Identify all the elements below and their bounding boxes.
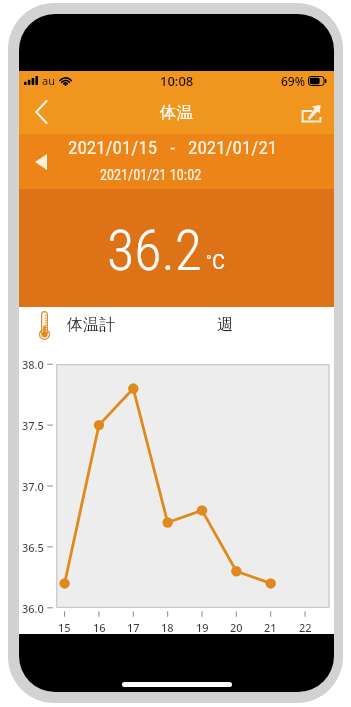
staticText: 20 — [230, 620, 243, 635]
staticText: au — [42, 73, 55, 88]
staticText: 22 — [299, 620, 312, 635]
staticText: 16 — [93, 620, 106, 635]
staticText: 10:08 — [160, 72, 194, 90]
staticText: 15 — [58, 620, 71, 635]
staticText: 18 — [161, 620, 174, 635]
staticText: 36.0 — [22, 601, 44, 616]
staticText: 2021/01/21 10:02 — [100, 167, 202, 184]
staticText: 37.0 — [22, 479, 44, 494]
staticText: 38.0 — [22, 357, 44, 372]
staticText: 17 — [127, 620, 140, 635]
staticText: 体温計 — [67, 315, 115, 335]
staticText: 36.5 — [22, 540, 44, 555]
button[interactable]: Back — [19, 90, 63, 134]
staticText: 2021/01/15 - 2021/01/21 — [68, 136, 278, 158]
staticText: 37.5 — [22, 418, 44, 433]
staticText: C — [212, 250, 226, 273]
staticText: 体温 — [160, 102, 193, 123]
staticText: 36.2 — [107, 218, 202, 284]
button[interactable]: Share — [290, 90, 334, 134]
staticText: ° — [206, 252, 212, 270]
staticText: 週 — [217, 315, 233, 335]
staticText: 19 — [196, 620, 209, 635]
button[interactable]: Previous week — [19, 134, 63, 189]
staticText: 69% — [281, 73, 305, 89]
button[interactable]: 週 — [209, 307, 249, 344]
staticText: 21 — [264, 620, 277, 635]
